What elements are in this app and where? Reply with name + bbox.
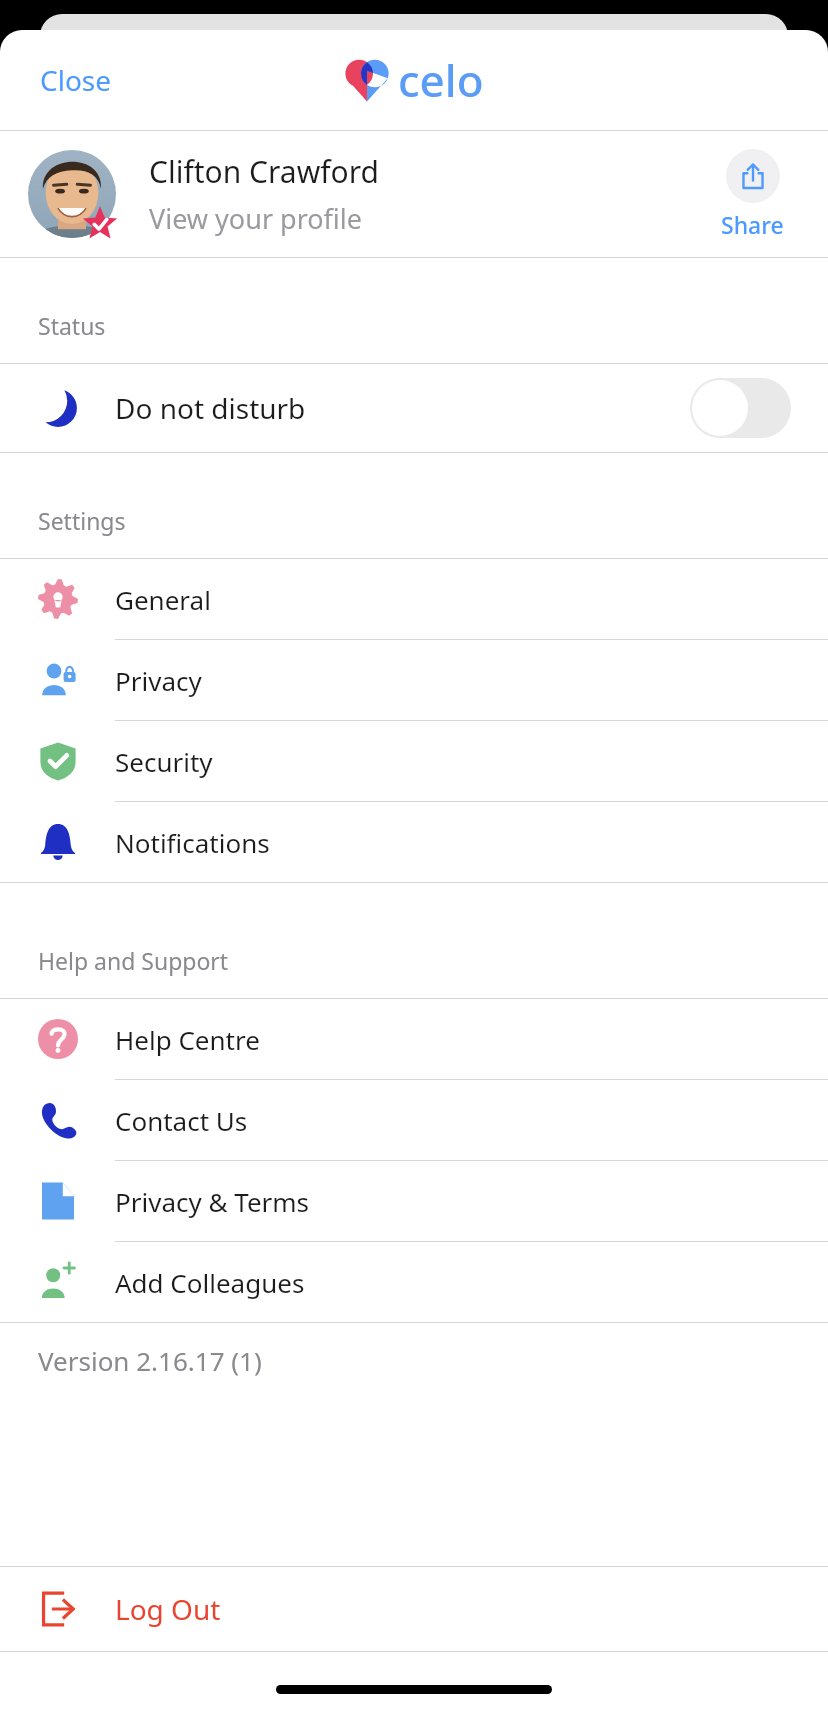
staticText: Clifton Crawford — [149, 151, 379, 192]
button[interactable]: Privacy — [0, 640, 828, 721]
button[interactable]: General — [0, 559, 828, 640]
staticText: Share — [721, 209, 784, 240]
staticText: Notifications — [115, 825, 270, 860]
button[interactable]: Privacy & Terms — [0, 1161, 828, 1242]
button[interactable]: Share — [715, 145, 790, 244]
button[interactable]: Security — [0, 721, 828, 802]
staticText: Privacy & Terms — [115, 1184, 310, 1219]
button[interactable]: Clifton Crawford — [0, 131, 828, 257]
button[interactable]: Close — [20, 51, 132, 109]
staticText: Privacy — [115, 663, 202, 698]
staticText: celo — [398, 50, 484, 110]
button[interactable]: Log Out — [0, 1567, 828, 1651]
button[interactable]: Help Centre — [0, 999, 828, 1080]
staticText: Contact Us — [115, 1103, 248, 1138]
staticText: Settings — [38, 505, 126, 536]
button[interactable]: Do not disturb — [0, 364, 828, 452]
button[interactable]: Do not disturb toggle — [690, 378, 791, 438]
staticText: Help Centre — [115, 1022, 260, 1057]
staticText: Version 2.16.17 (1) — [38, 1343, 262, 1378]
staticText: General — [115, 582, 211, 617]
button[interactable]: Notifications — [0, 802, 828, 882]
staticText: View your profile — [149, 200, 363, 237]
staticText: Do not disturb — [115, 389, 690, 427]
staticText: Status — [38, 310, 106, 341]
button[interactable]: Contact Us — [0, 1080, 828, 1161]
staticText: Help and Support — [38, 945, 229, 976]
staticText: Add Colleagues — [115, 1265, 305, 1300]
staticText: Log Out — [115, 1590, 221, 1628]
button[interactable]: Add Colleagues — [0, 1242, 828, 1322]
staticText: Security — [115, 744, 213, 779]
staticText: Close — [40, 61, 112, 99]
